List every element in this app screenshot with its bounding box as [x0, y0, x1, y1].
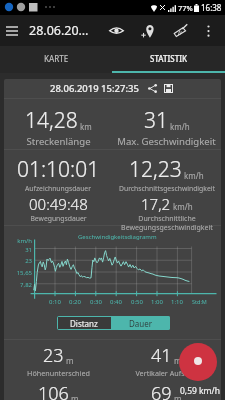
staticText: 1:00: [151, 298, 163, 306]
button[interactable]: KARTE: [0, 46, 112, 71]
staticText: 1:10: [171, 298, 183, 306]
staticText: 16:38: [201, 2, 222, 13]
staticText: Bewegungsdauer: [30, 214, 87, 223]
staticText: 41: [151, 343, 172, 368]
button[interactable]: Speichern: [162, 82, 175, 95]
staticText: Std:M: [192, 298, 207, 305]
staticText: 12,23: [129, 155, 182, 184]
staticText: 0:10: [49, 298, 61, 306]
button[interactable]: Anzeigen: [100, 15, 132, 46]
staticText: m: [174, 393, 182, 400]
staticText: 69: [151, 381, 172, 400]
staticText: 77%: [178, 3, 193, 13]
staticText: 01:10:01: [17, 155, 100, 184]
staticText: 0:20: [69, 298, 81, 306]
button[interactable]: STATISTIK: [112, 46, 225, 71]
staticText: m: [174, 355, 182, 366]
button[interactable]: Distanz: [57, 316, 111, 330]
staticText: km/h: [173, 201, 193, 212]
staticText: Max. Geschwindigkeit: [117, 135, 216, 148]
staticText: Höhenunterschied: [27, 368, 90, 378]
staticText: 17,2: [141, 194, 171, 214]
staticText: km: [80, 121, 92, 132]
staticText: 28.06.20…: [29, 22, 89, 39]
button[interactable]: Mehr: [196, 15, 221, 46]
staticText: Aufzeichnungsdauer: [25, 184, 91, 193]
staticText: Durchschnittsgeschwindigkeit: [119, 184, 215, 193]
staticText: 23: [43, 343, 64, 368]
staticText: 23: [25, 257, 32, 265]
staticText: 0:50: [131, 298, 143, 306]
staticText: 0,59 km/h: [180, 385, 220, 397]
staticText: 31: [25, 246, 32, 254]
staticText: 15,65: [16, 269, 32, 277]
staticText: 0:40: [110, 298, 122, 306]
button[interactable]: Ort hinzufügen: [132, 15, 164, 46]
button[interactable]: Dauer: [111, 316, 170, 330]
button[interactable]: Aufzeichnung starten: [179, 343, 217, 381]
staticText: 00:49:48: [29, 194, 88, 214]
staticText: km/h: [184, 170, 204, 181]
staticText: km/h: [17, 237, 32, 245]
button[interactable]: Teilen: [146, 82, 159, 95]
staticText: 28.06.2019 15:27:35: [50, 82, 139, 95]
staticText: STATISTIK: [150, 53, 188, 64]
staticText: Dauer: [129, 318, 153, 329]
staticText: km/h: [170, 121, 190, 132]
staticText: KARTE: [44, 53, 69, 64]
staticText: Durchschnittliche Bewegungsgeschwindigke…: [121, 214, 213, 232]
staticText: Distanz: [70, 318, 98, 329]
staticText: Geschwindigkeitsdiagramm: [78, 233, 157, 241]
button[interactable]: Menü: [0, 15, 24, 46]
staticText: 0:30: [90, 298, 102, 306]
staticText: 31: [144, 106, 168, 135]
staticText: Streckenlänge: [26, 135, 91, 148]
staticText: 106: [38, 381, 69, 400]
staticText: m: [66, 355, 74, 366]
staticText: 14,28: [25, 106, 78, 135]
staticText: 7,82: [20, 281, 32, 289]
button[interactable]: Werkzeug: [164, 15, 196, 46]
staticText: m: [71, 393, 79, 400]
staticText: Vertikaler Aufstieg: [135, 368, 198, 378]
